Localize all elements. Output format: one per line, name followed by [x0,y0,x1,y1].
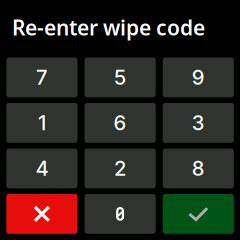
button[interactable]: Confirm [163,194,234,234]
button[interactable]: Cancel [6,194,77,234]
button[interactable]: 3 [163,103,234,143]
staticText: Re-enter wipe code [12,13,205,41]
staticText: 6 [114,111,127,135]
button[interactable]: 2 [84,148,156,188]
button[interactable]: 5 [84,57,156,97]
button[interactable]: 8 [163,148,234,188]
staticText: 2 [114,156,126,181]
staticText: 8 [192,156,205,181]
staticText: 9 [192,65,205,90]
staticText: 7 [36,65,48,90]
button[interactable]: 0 [84,194,156,234]
button[interactable]: 7 [6,57,77,97]
staticText: 4 [35,156,48,181]
staticText: 5 [114,65,126,90]
staticText: 3 [192,111,205,135]
button[interactable]: 6 [84,103,156,143]
button[interactable]: 4 [6,148,77,188]
button[interactable]: 9 [163,57,234,97]
button[interactable]: 1 [6,103,77,143]
staticText: 1 [38,111,46,135]
